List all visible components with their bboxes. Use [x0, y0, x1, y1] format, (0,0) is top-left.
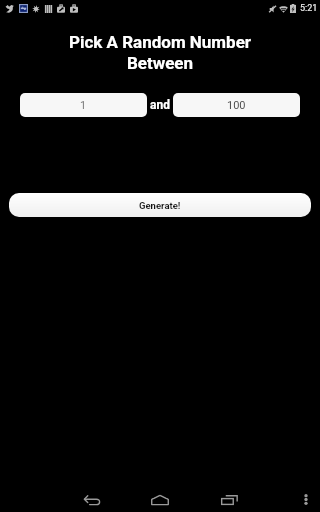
button[interactable]: 100 — [173, 93, 300, 117]
staticText: Generate! — [139, 200, 181, 211]
button[interactable]: Recent apps — [205, 487, 253, 512]
button[interactable]: More options — [294, 487, 318, 512]
staticText: 1 — [80, 99, 87, 112]
staticText: 5:21 — [300, 3, 318, 14]
button[interactable]: Home — [136, 487, 184, 512]
button[interactable]: Back — [68, 487, 116, 512]
button[interactable]: 1 — [20, 93, 147, 117]
button[interactable]: Generate! — [9, 193, 311, 217]
staticText: Pick A Random Number Between — [40, 32, 280, 73]
staticText: and — [150, 98, 170, 112]
staticText: 100 — [227, 99, 246, 112]
